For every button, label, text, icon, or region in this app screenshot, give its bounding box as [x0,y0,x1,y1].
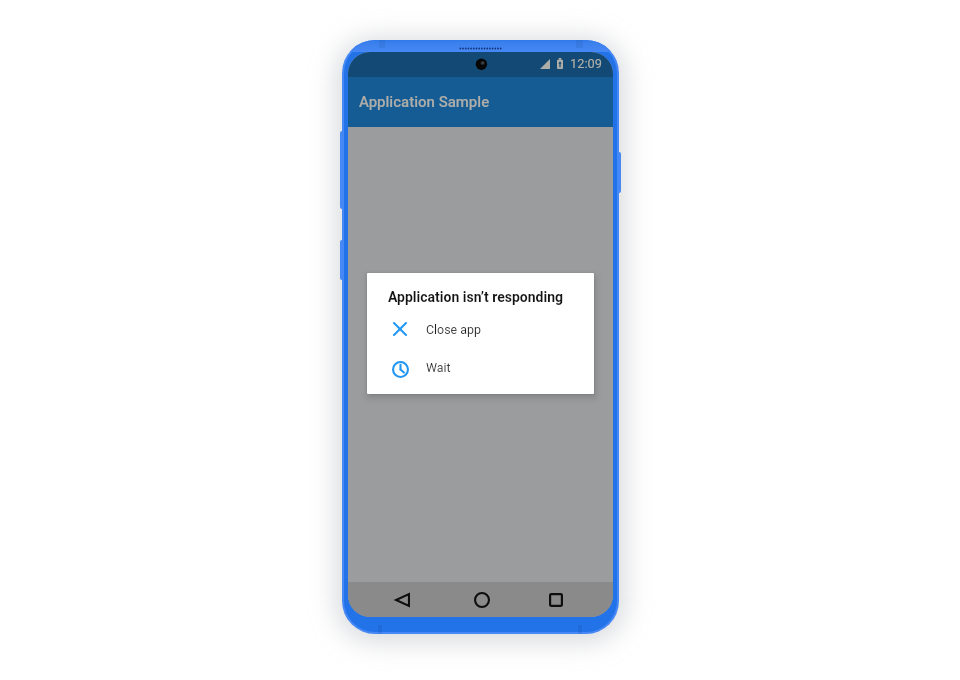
button[interactable]: Home [462,582,502,617]
staticText: 12:09 [570,56,602,71]
staticText: Application isn’t responding [388,289,563,305]
button[interactable]: Recent apps [536,582,576,617]
button[interactable]: Back [382,582,422,617]
button[interactable]: Wait [367,352,594,382]
staticText: Wait [426,360,451,375]
staticText: Application Sample [359,93,490,111]
staticText: Close app [426,322,481,337]
button[interactable]: Close app [367,314,594,344]
